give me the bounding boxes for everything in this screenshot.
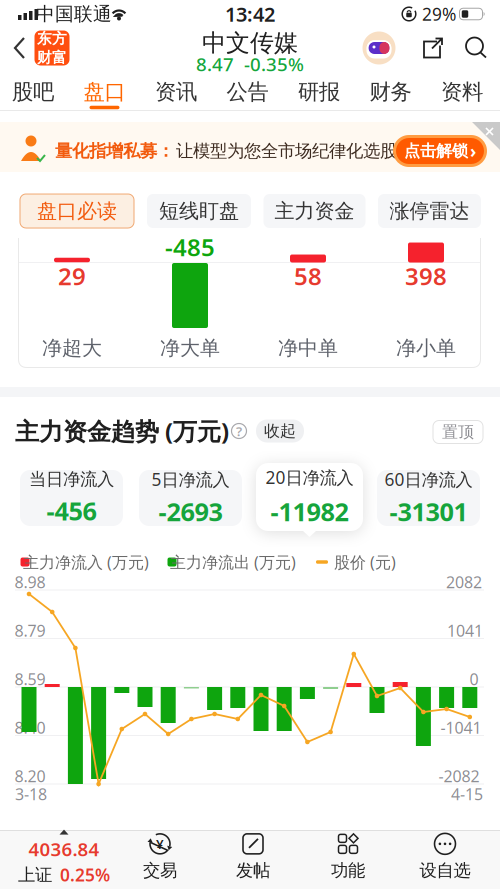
staticText: 资讯 — [155, 79, 197, 105]
button[interactable]: 公告 — [220, 73, 274, 111]
staticText: 主力资金 — [274, 199, 354, 223]
staticText: 置顶 — [442, 422, 474, 442]
button[interactable]: 主力资金 — [263, 194, 365, 228]
button[interactable]: 5日净流入 — [139, 468, 242, 528]
staticText: 0 — [469, 668, 478, 690]
button[interactable]: 东方财富 — [34, 29, 69, 66]
staticText: 8.40 — [14, 717, 45, 738]
button[interactable]: Assistant — [362, 31, 395, 64]
staticText: 股价 (元) — [334, 551, 396, 573]
staticText: -31301 — [389, 495, 467, 528]
staticText: 短线盯盘 — [159, 199, 239, 223]
staticText: 净小单 — [396, 336, 456, 360]
button[interactable]: 盘口必读 — [20, 194, 134, 228]
staticText: 设自选 — [419, 860, 470, 881]
staticText: 点击解锁 — [404, 141, 468, 161]
button[interactable]: 发帖 — [236, 833, 270, 881]
staticText: 研报 — [298, 79, 340, 105]
staticText: 股吧 — [12, 79, 54, 105]
staticText: 8.20 — [14, 765, 45, 787]
staticText: 盘口 — [83, 79, 125, 105]
staticText: 当日净流入 — [29, 468, 114, 490]
button[interactable]: 功能 — [331, 833, 365, 881]
staticText: 0.25% — [60, 863, 110, 886]
staticText: 涨停雷达 — [389, 199, 469, 223]
staticText: -2082 — [438, 765, 479, 787]
staticText: -2693 — [158, 495, 222, 528]
staticText: ? — [236, 422, 242, 440]
button[interactable]: 设自选 — [419, 833, 470, 881]
button[interactable]: 股吧 — [6, 73, 60, 111]
staticText: 交易 — [143, 860, 177, 881]
button[interactable]: 4036.84 — [18, 830, 110, 886]
button[interactable]: 置顶 — [433, 420, 483, 443]
staticText: 让模型为您全市场纪律化选股 — [176, 140, 397, 162]
button[interactable]: Back — [13, 36, 25, 60]
button[interactable]: ¥ — [143, 833, 177, 881]
button[interactable]: 60日净流入 — [377, 468, 480, 528]
staticText: 13:42 — [225, 1, 275, 27]
button[interactable]: 点击解锁 — [393, 135, 487, 167]
staticText: 盘口必读 — [37, 199, 117, 223]
staticText: 3-18 — [15, 783, 47, 805]
staticText: 净超大 — [42, 336, 102, 360]
staticText: -11982 — [270, 495, 348, 528]
staticText: 29 — [58, 260, 86, 292]
staticText: 58 — [294, 260, 322, 292]
staticText: 29% — [422, 2, 456, 25]
staticText: 中国联通 — [36, 2, 112, 25]
button[interactable]: 涨停雷达 — [378, 194, 481, 228]
staticText: 8.98 — [14, 571, 45, 593]
button[interactable]: 资讯 — [149, 73, 203, 111]
button[interactable]: 量化指增私募 — [0, 122, 500, 172]
staticText: 5日净流入 — [151, 468, 229, 491]
button[interactable]: Search — [465, 36, 487, 58]
staticText: -0.35% — [244, 52, 304, 76]
staticText: 公告 — [226, 79, 268, 105]
staticText: 2082 — [446, 571, 482, 593]
staticText: 398 — [405, 260, 447, 292]
staticText: -456 — [46, 494, 96, 527]
staticText: 主力净流出 (万元) — [170, 551, 296, 573]
staticText: 60日净流入 — [384, 468, 472, 491]
button[interactable]: 研报 — [292, 73, 346, 111]
button[interactable]: 盘口 — [77, 73, 131, 111]
staticText: 中文传媒 — [202, 28, 298, 58]
staticText: 量化指增私募： — [55, 140, 174, 162]
staticText: 收起 — [264, 421, 296, 441]
staticText: 财富 — [37, 48, 67, 66]
button[interactable]: 短线盯盘 — [147, 194, 251, 228]
staticText: 主力净流入 (万元) — [23, 551, 149, 573]
staticText: 20日净流入 — [265, 466, 353, 489]
button[interactable]: 当日净流入 — [20, 468, 123, 527]
staticText: -1041 — [440, 717, 481, 738]
staticText: 4-15 — [451, 783, 483, 805]
staticText: -485 — [165, 231, 215, 263]
staticText: 8.79 — [14, 620, 45, 641]
staticText: 财务 — [369, 79, 411, 105]
staticText: 主力资金趋势 (万元) — [15, 415, 229, 447]
button[interactable]: 收起 — [256, 419, 304, 442]
staticText: 资料 — [441, 79, 483, 105]
staticText: 1041 — [447, 620, 483, 641]
button[interactable]: Close banner — [472, 122, 500, 150]
button[interactable]: Share — [423, 37, 443, 58]
button[interactable]: 帮助 — [231, 422, 246, 440]
staticText: 功能 — [331, 860, 365, 881]
staticText: 净大单 — [160, 336, 220, 360]
staticText: › — [470, 139, 476, 162]
staticText: 东方 — [37, 29, 67, 47]
staticText: 净中单 — [278, 336, 338, 360]
staticText: ¥ — [156, 835, 164, 853]
staticText: 上证 — [18, 864, 52, 885]
staticText: 发帖 — [236, 860, 270, 881]
button[interactable]: 20日净流入 — [256, 463, 363, 531]
staticText: 8.59 — [14, 668, 45, 690]
staticText: 8.47 — [196, 52, 234, 76]
button[interactable]: 资料 — [435, 73, 489, 111]
staticText: 4036.84 — [28, 837, 99, 861]
button[interactable]: 财务 — [363, 73, 417, 111]
